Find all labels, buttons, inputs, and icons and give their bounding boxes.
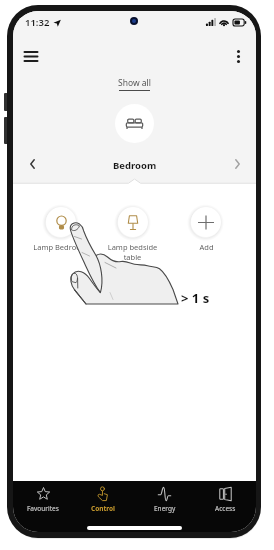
staticText: Bedroom bbox=[113, 159, 157, 172]
staticText: Energy bbox=[154, 504, 176, 513]
staticText: > 1 s bbox=[181, 289, 210, 307]
button[interactable]: Bedroom bbox=[115, 104, 154, 143]
button[interactable]: Lamp Bedroom bbox=[24, 203, 96, 252]
button[interactable]: Next room bbox=[226, 153, 248, 175]
button[interactable]: Lamp bedside table bbox=[96, 203, 169, 262]
button[interactable]: Menu bbox=[18, 43, 44, 69]
button[interactable]: Add bbox=[169, 203, 242, 252]
button[interactable]: Energy bbox=[134, 487, 195, 513]
staticText: 11:32 bbox=[25, 16, 50, 29]
staticText: Lamp Bedroom bbox=[33, 242, 88, 252]
button[interactable]: Previous room bbox=[21, 153, 43, 175]
button[interactable]: More options bbox=[225, 43, 251, 69]
button[interactable]: Control bbox=[73, 487, 134, 513]
staticText: Favourites bbox=[27, 504, 59, 513]
button[interactable]: Favourites bbox=[13, 487, 73, 513]
staticText: Add bbox=[199, 242, 214, 252]
staticText: Show all bbox=[118, 77, 151, 89]
button[interactable]: Access bbox=[195, 487, 256, 513]
button[interactable]: Show all bbox=[113, 76, 156, 92]
staticText: Access bbox=[215, 504, 236, 513]
staticText: Control bbox=[91, 504, 116, 513]
staticText: Lamp bedside table bbox=[106, 242, 159, 262]
